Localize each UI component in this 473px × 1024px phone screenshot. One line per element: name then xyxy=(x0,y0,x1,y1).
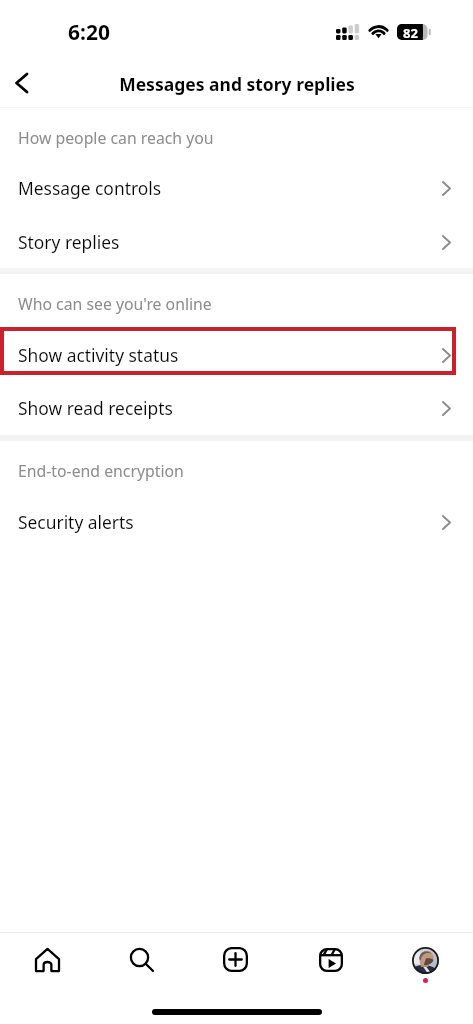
staticText: End-to-end encryption xyxy=(18,460,184,482)
staticText: Show read receipts xyxy=(18,396,173,420)
button[interactable]: Story replies xyxy=(0,217,473,267)
button[interactable]: Create xyxy=(188,933,283,987)
button[interactable]: Show activity status xyxy=(0,330,473,380)
button[interactable]: Message controls xyxy=(0,163,473,213)
staticText: Message controls xyxy=(18,176,162,200)
staticText: 82 xyxy=(403,24,418,40)
staticText: Story replies xyxy=(18,230,120,254)
button[interactable]: Show read receipts xyxy=(0,383,473,433)
staticText: Security alerts xyxy=(18,510,134,534)
staticText: Messages and story replies xyxy=(119,72,355,96)
staticText: Show activity status xyxy=(18,343,179,367)
button[interactable]: Reels xyxy=(283,933,378,987)
button[interactable]: Back xyxy=(3,66,39,102)
button[interactable]: Search xyxy=(94,933,188,987)
button[interactable]: Profile xyxy=(378,933,473,987)
button[interactable]: Security alerts xyxy=(0,497,473,547)
staticText: 6:20 xyxy=(68,18,110,47)
button[interactable]: Home xyxy=(0,933,94,987)
staticText: Who can see you're online xyxy=(18,293,212,315)
staticText: How people can reach you xyxy=(18,127,214,149)
